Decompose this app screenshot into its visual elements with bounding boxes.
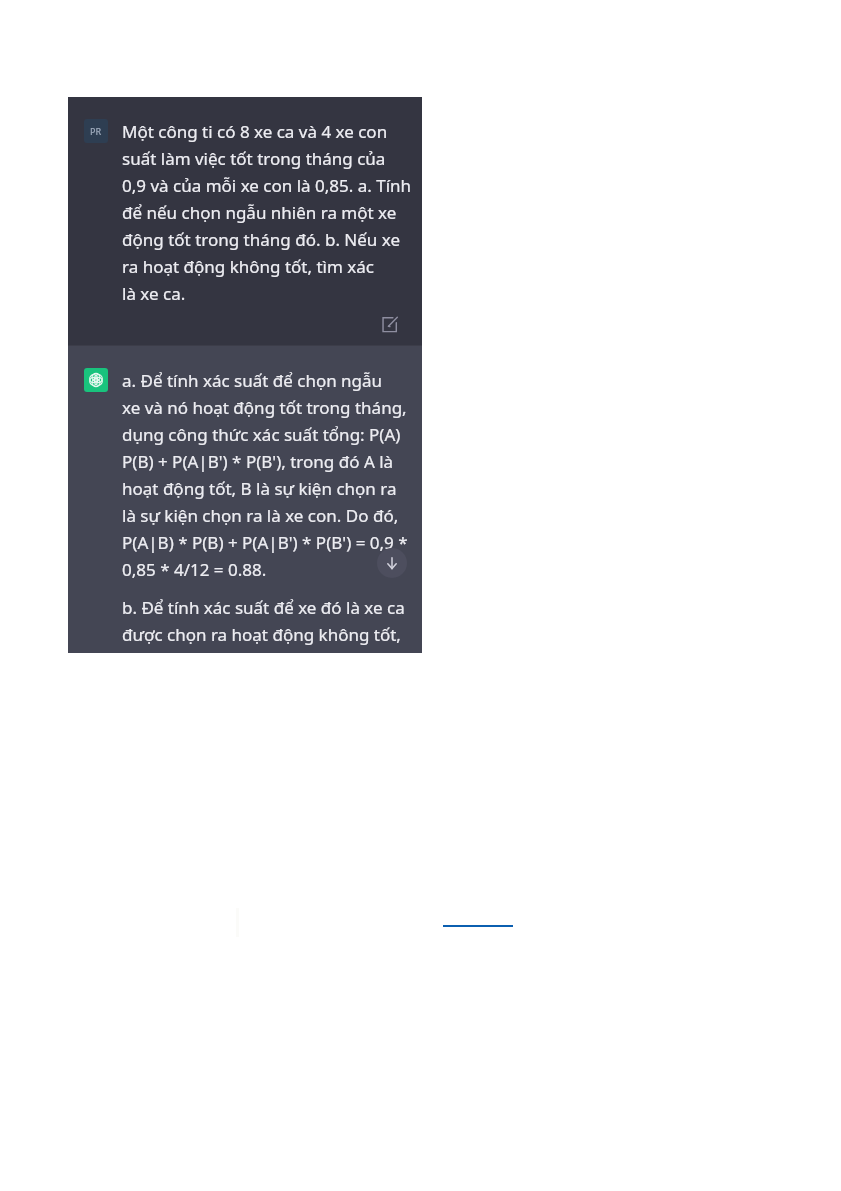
staticText: P(B) + P(A|B') * P(B'), trong đó A là sự… [122, 450, 412, 473]
button[interactable]: a. Để tính xác suất để chọn ngẫu nhiên m… [68, 346, 422, 653]
staticText: là xe ca. [122, 282, 186, 305]
staticText: Một công ti có 8 xe ca và 4 xe con với x… [122, 120, 412, 143]
staticText: để nếu chọn ngẫu nhiên ra một xe thì nó … [122, 201, 412, 224]
staticText: b. Để tính xác suất để xe đó là xe ca kh… [122, 596, 412, 619]
staticText: hoạt động tốt, B là sự kiện chọn ra là x… [122, 477, 412, 500]
button[interactable]: PR [68, 97, 422, 345]
staticText: động tốt trong tháng đó. b. Nếu xe được … [122, 228, 412, 251]
staticText: P(A|B) * P(B) + P(A|B') * P(B') = 0,9 * … [122, 531, 412, 554]
staticText: 0,9 và của mỗi xe con là 0,85. a. Tính x… [122, 174, 412, 197]
staticText: xe và nó hoạt động tốt trong tháng, ta s… [122, 396, 412, 419]
staticText: a. Để tính xác suất để chọn ngẫu nhiên m… [122, 369, 412, 392]
button[interactable]: Edit message [376, 311, 402, 337]
staticText: là sự kiện chọn ra là xe con. Do đó, P(A… [122, 504, 412, 527]
staticText: suất làm việc tốt trong tháng của mỗi xe… [122, 147, 412, 170]
staticText: PR [90, 125, 102, 137]
staticText: dụng công thức xác suất tổng: P(A) = P(A… [122, 423, 412, 446]
staticText: được chọn ra hoạt động không tốt, ta sử [122, 623, 412, 646]
button[interactable]: Scroll to bottom [377, 548, 407, 578]
staticText: ra hoạt động không tốt, tìm xác suất để … [122, 255, 412, 278]
staticText: 0,85 * 4/12 = 0.88. [122, 558, 267, 581]
